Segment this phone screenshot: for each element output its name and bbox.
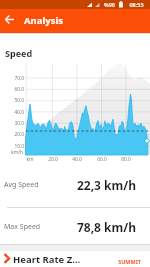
staticText: Max Speed [4, 222, 64, 232]
staticText: 78,8 km/h [66, 219, 136, 235]
staticText: 40.0 [0, 109, 24, 116]
staticText: 70.0 [0, 75, 24, 82]
staticText: 60.0 [94, 156, 110, 163]
staticText: 40.0 [69, 156, 85, 163]
button[interactable]: Max Speed [0, 208, 150, 244]
staticText: 10.0 [0, 143, 24, 150]
staticText: km [22, 156, 38, 163]
staticText: Speed [5, 47, 65, 59]
button[interactable] [0, 9, 20, 33]
staticText: 30.0 [0, 120, 24, 127]
button[interactable]: Avg Speed [0, 167, 150, 207]
staticText: 60.0 [0, 86, 24, 93]
staticText: 08:55 [125, 1, 148, 8]
staticText: %96 [101, 1, 118, 8]
staticText: 50.0 [0, 97, 24, 104]
staticText: Avg Speed [4, 180, 64, 190]
staticText: 80.0 [118, 156, 134, 163]
staticText: 22,3 km/h [66, 177, 136, 193]
button[interactable]: SUMMIT [107, 252, 141, 264]
staticText: SUMMIT [107, 258, 141, 265]
staticText: 20.0 [0, 131, 24, 138]
staticText: Analysis [24, 14, 94, 27]
button[interactable]: Heart Rate Z… [0, 251, 150, 267]
staticText: km/h [0, 149, 23, 156]
staticText: 20.0 [45, 156, 61, 163]
staticText: Heart Rate Z… [13, 253, 83, 266]
